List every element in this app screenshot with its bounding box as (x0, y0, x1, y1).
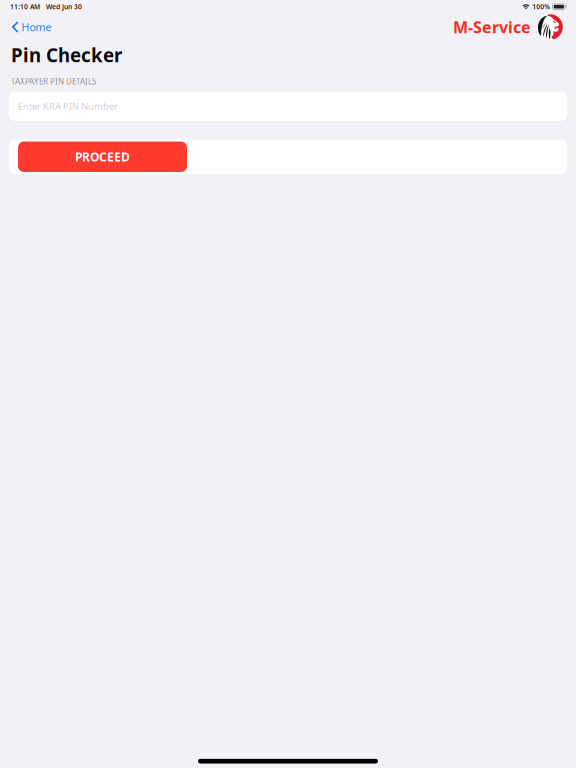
button[interactable]: PROCEED (18, 141, 187, 172)
staticText: Pin Checker (11, 43, 122, 67)
staticText: Home (22, 20, 52, 34)
button[interactable]: Home (0, 16, 60, 38)
staticText: 11:10 AM (10, 2, 40, 11)
button[interactable]: M-Service (453, 14, 576, 40)
staticText: Wed Jun 30 (46, 2, 82, 11)
staticText: Enter KRA PIN Number (18, 100, 118, 112)
staticText: PROCEED (75, 149, 130, 165)
staticText: M-Service (453, 16, 531, 38)
staticText: TAXPAYER PIN DETAILS (11, 76, 96, 87)
staticText: 100% (532, 2, 550, 11)
